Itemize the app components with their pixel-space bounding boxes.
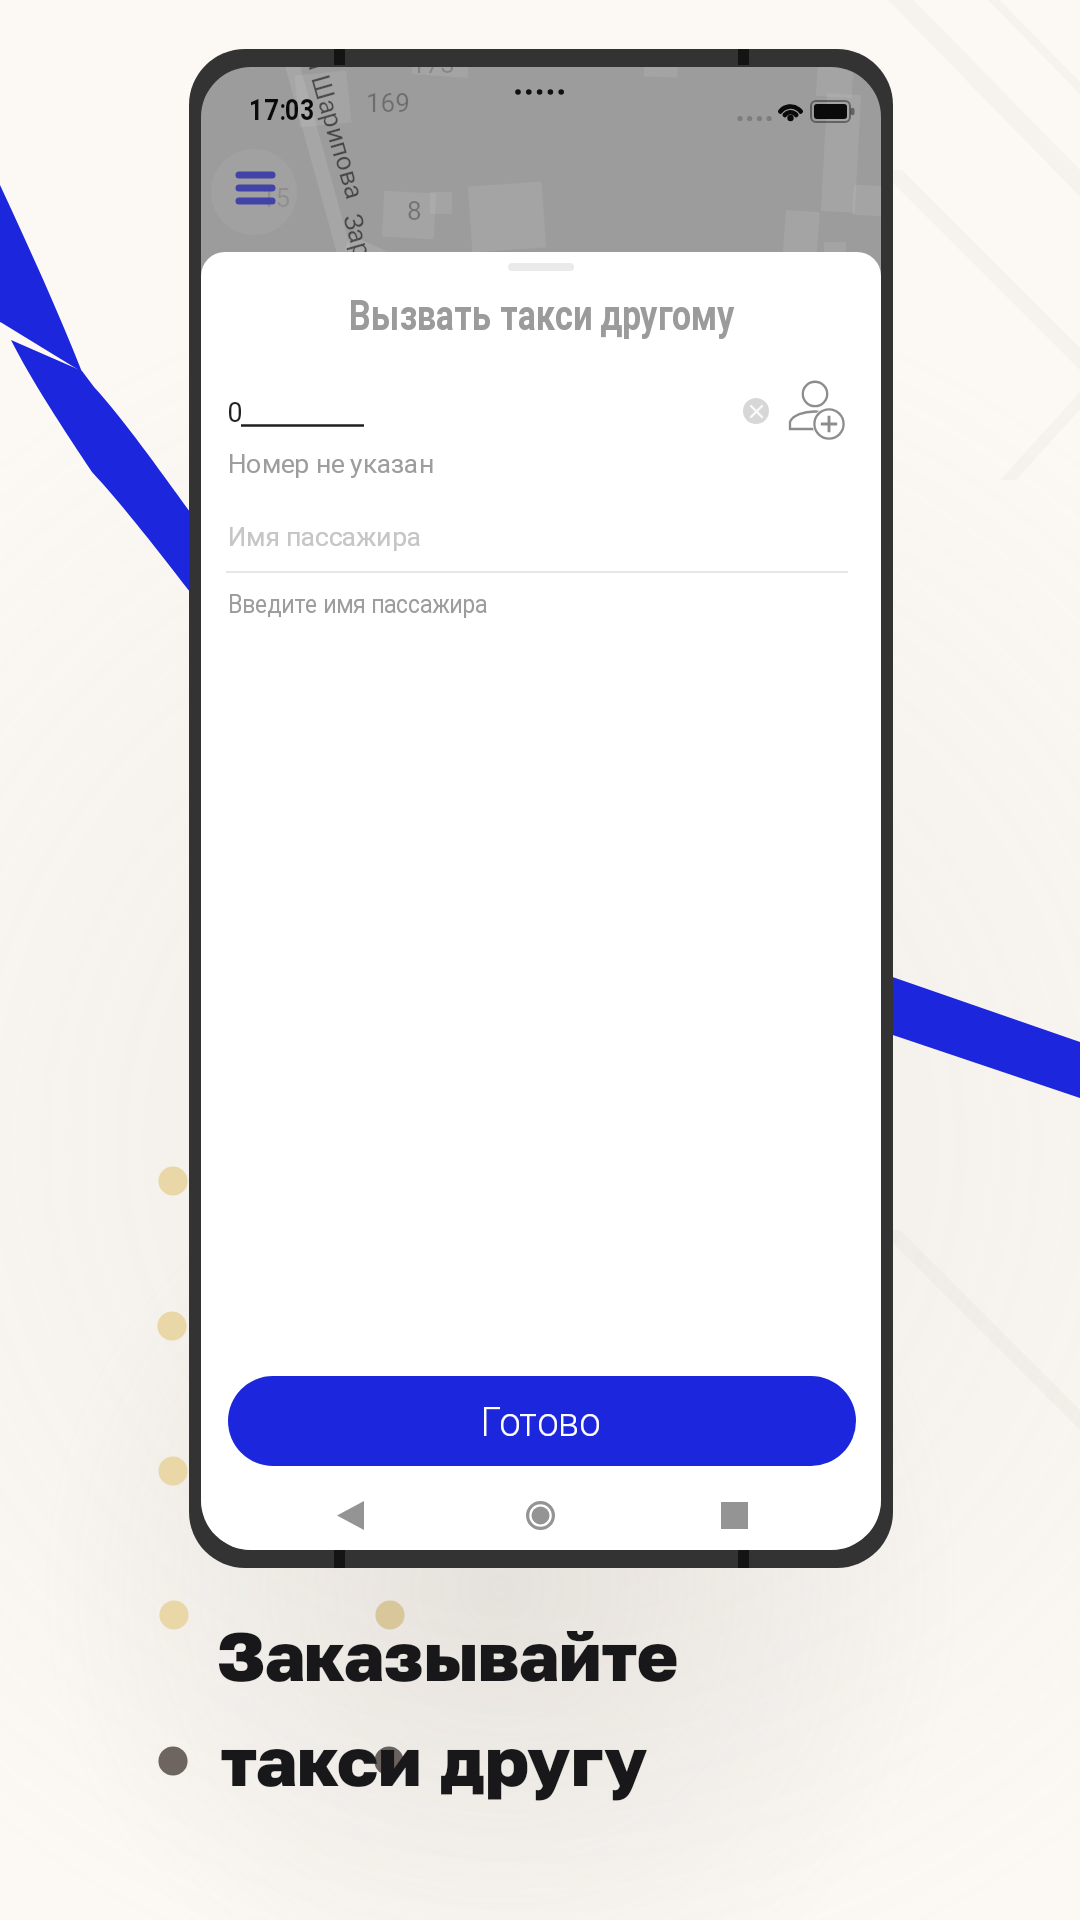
staticText: 8 — [407, 196, 422, 226]
button[interactable]: Add contact — [789, 378, 855, 444]
staticText: 15 — [261, 183, 291, 213]
button[interactable]: Recent apps — [709, 1490, 759, 1540]
staticText: 169 — [366, 88, 410, 118]
staticText: 173 — [411, 67, 455, 79]
button[interactable]: Clear number — [743, 398, 769, 424]
button[interactable] — [228, 1376, 856, 1466]
button[interactable]: Home — [515, 1490, 565, 1540]
button[interactable]: Back — [325, 1490, 375, 1540]
button[interactable]: Menu — [211, 149, 297, 235]
